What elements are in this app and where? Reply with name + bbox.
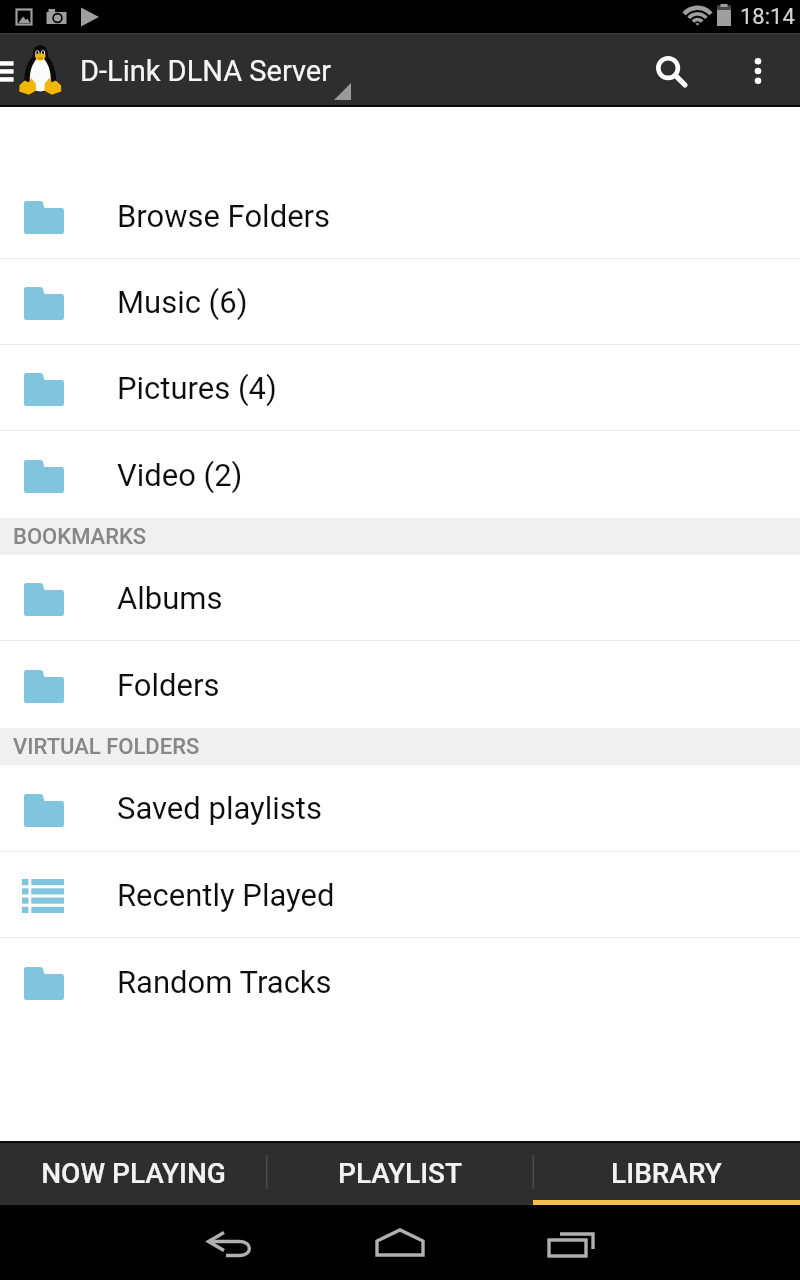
button[interactable]: Music (6) [0,259,800,344]
staticText: Saved playlists [117,790,322,826]
staticText: Browse Folders [117,198,331,234]
staticText: NOW PLAYING [41,1157,226,1190]
staticText: D-Link DLNA Server [80,54,332,88]
button[interactable]: Saved playlists [0,765,800,851]
staticText: BOOKMARKS [13,524,147,550]
button[interactable]: Search [629,34,715,107]
button[interactable]: More options [715,34,800,107]
button[interactable]: PLAYLIST [266,1141,533,1205]
staticText: PLAYLIST [338,1157,462,1190]
button[interactable]: NOW PLAYING [0,1141,266,1205]
staticText: Folders [117,667,220,703]
staticText: VIRTUAL FOLDERS [13,734,200,760]
button[interactable]: LIBRARY [533,1141,800,1205]
button[interactable]: Video (2) [0,431,800,518]
staticText: Albums [117,580,223,616]
button[interactable]: Folders [0,641,800,728]
staticText: 18:14 [740,4,795,30]
button[interactable]: Navigate up [0,34,70,107]
staticText: LIBRARY [611,1157,722,1190]
button[interactable]: Home [266,1205,533,1280]
button[interactable]: Recent apps [533,1205,800,1280]
staticText: Music (6) [117,284,248,320]
button[interactable]: Albums [0,555,800,640]
button[interactable]: Recently Played [0,852,800,937]
staticText: Video (2) [117,457,243,493]
staticText: Recently Played [117,877,335,913]
button[interactable]: Random Tracks [0,938,800,1025]
button[interactable]: Browse Folders [0,107,800,258]
button[interactable]: Back [0,1205,266,1280]
button[interactable]: Pictures (4) [0,345,800,430]
staticText: Pictures (4) [117,370,277,406]
staticText: Random Tracks [117,964,332,1000]
